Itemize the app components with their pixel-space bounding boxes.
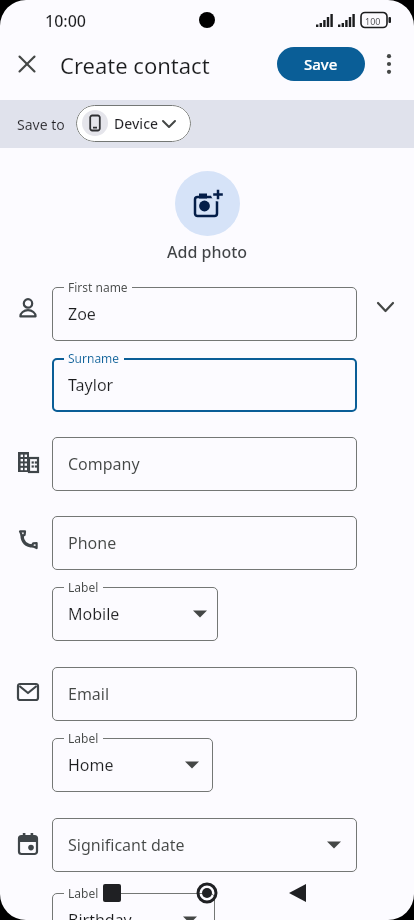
button[interactable]: Email: [52, 667, 357, 721]
button[interactable]: Significant date: [52, 818, 357, 872]
staticText: Device: [114, 114, 159, 133]
staticText: Home: [68, 754, 114, 776]
staticText: Mobile: [68, 603, 120, 625]
button[interactable]: Zoe: [52, 287, 357, 341]
staticText: 10:00: [45, 10, 86, 32]
staticText: Save: [304, 54, 338, 74]
staticText: Email: [68, 683, 110, 705]
staticText: Add photo: [167, 241, 248, 263]
button[interactable]: Company: [52, 437, 357, 491]
staticText: Significant date: [68, 834, 185, 856]
staticText: Company: [68, 453, 140, 475]
staticText: Surname: [68, 350, 120, 366]
staticText: 100: [365, 15, 381, 27]
staticText: Phone: [68, 532, 117, 554]
staticText: Label: [68, 730, 99, 746]
button[interactable]: Device: [76, 105, 191, 142]
button[interactable]: Home: [52, 738, 213, 792]
button[interactable]: [381, 54, 397, 74]
staticText: Label: [68, 579, 99, 595]
staticText: Save to: [17, 115, 65, 134]
button[interactable]: [175, 171, 240, 236]
staticText: Birthday: [68, 909, 132, 920]
staticText: First name: [68, 279, 128, 295]
button[interactable]: [19, 56, 35, 72]
staticText: Label: [68, 885, 99, 901]
staticText: Taylor: [68, 374, 114, 396]
button[interactable]: Mobile: [52, 587, 218, 641]
staticText: Create contact: [60, 50, 210, 80]
button[interactable]: Birthday: [52, 893, 215, 920]
button[interactable]: Taylor: [52, 358, 357, 412]
button[interactable]: Phone: [52, 516, 357, 570]
button[interactable]: Save: [277, 47, 365, 81]
staticText: Zoe: [68, 303, 96, 325]
